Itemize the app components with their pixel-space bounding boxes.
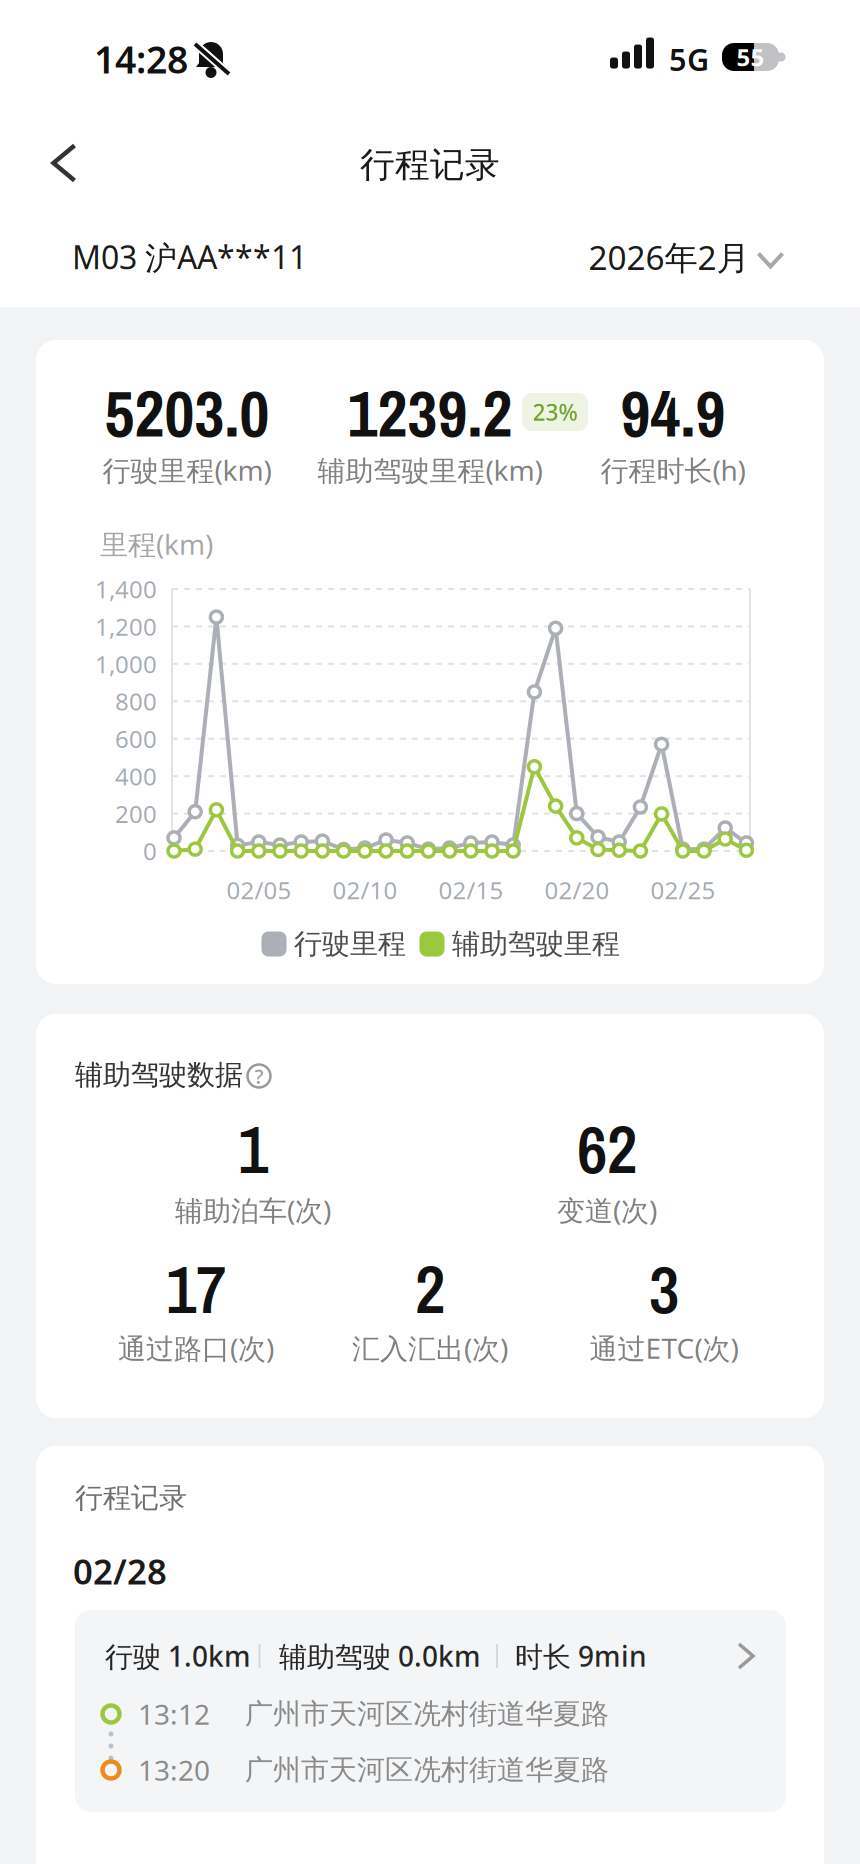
button[interactable]: 2026年2月 (588, 235, 783, 279)
staticText: 02/10 (332, 874, 397, 906)
staticText: 辅助驾驶数据 (75, 1058, 243, 1092)
staticText: 变道(次) (557, 1191, 657, 1229)
staticText: 62 (577, 1104, 637, 1194)
staticText: 汇入汇出(次) (352, 1329, 508, 1367)
staticText: 5G (669, 39, 709, 79)
staticText: 行程记录 (75, 1481, 187, 1515)
staticText: 800 (115, 685, 157, 717)
staticText: 2026年2月 (588, 235, 749, 279)
staticText: 2 (415, 1244, 445, 1334)
staticText: 02/28 (73, 1548, 167, 1594)
staticText: 3 (649, 1244, 679, 1334)
staticText: 1,200 (95, 610, 157, 642)
staticText: ? (254, 1063, 263, 1089)
staticText: 辅助泊车(次) (175, 1191, 331, 1229)
button[interactable]: Help (246, 1063, 272, 1089)
staticText: 行驶 1.0km (105, 1637, 251, 1675)
staticText: 通过路口(次) (118, 1329, 274, 1367)
staticText: 0 (143, 835, 157, 867)
staticText: 行驶里程(km) (102, 451, 271, 489)
staticText: 600 (115, 723, 157, 755)
staticText: 23% (532, 397, 577, 427)
staticText: 里程(km) (100, 525, 213, 563)
staticText: 02/25 (650, 874, 715, 906)
staticText: 辅助驾驶里程(km) (317, 451, 542, 489)
staticText: 广州市天河区冼村街道华夏路 (245, 1753, 609, 1787)
staticText: 17 (166, 1244, 226, 1334)
staticText: 1,400 (95, 573, 157, 605)
staticText: 02/05 (226, 874, 291, 906)
staticText: 1,000 (95, 648, 157, 680)
staticText: 行驶里程 (294, 927, 406, 961)
staticText: 94.9 (620, 369, 725, 457)
staticText: 55 (736, 41, 764, 73)
button[interactable]: Back (32, 132, 96, 194)
staticText: 02/15 (438, 874, 503, 906)
staticText: 通过ETC(次) (589, 1329, 738, 1367)
staticText: 1 (238, 1104, 268, 1194)
staticText: 5203.0 (104, 369, 269, 457)
staticText: 02/20 (544, 874, 609, 906)
staticText: 行程时长(h) (600, 451, 745, 489)
staticText: 辅助驾驶里程 (452, 927, 620, 961)
staticText: 行程记录 (360, 144, 500, 186)
staticText: 广州市天河区冼村街道华夏路 (245, 1697, 609, 1731)
button[interactable]: 行驶 1.0km (75, 1610, 786, 1812)
staticText: 400 (115, 760, 157, 792)
staticText: 13:20 (138, 1751, 210, 1789)
staticText: 14:28 (94, 34, 188, 84)
staticText: 辅助驾驶 0.0km (279, 1637, 481, 1675)
staticText: 13:12 (138, 1695, 210, 1733)
staticText: 时长 9min (515, 1637, 647, 1675)
staticText: 1239.2 (347, 369, 512, 457)
staticText: 200 (115, 798, 157, 829)
staticText: M03 沪AA***11 (72, 236, 307, 278)
